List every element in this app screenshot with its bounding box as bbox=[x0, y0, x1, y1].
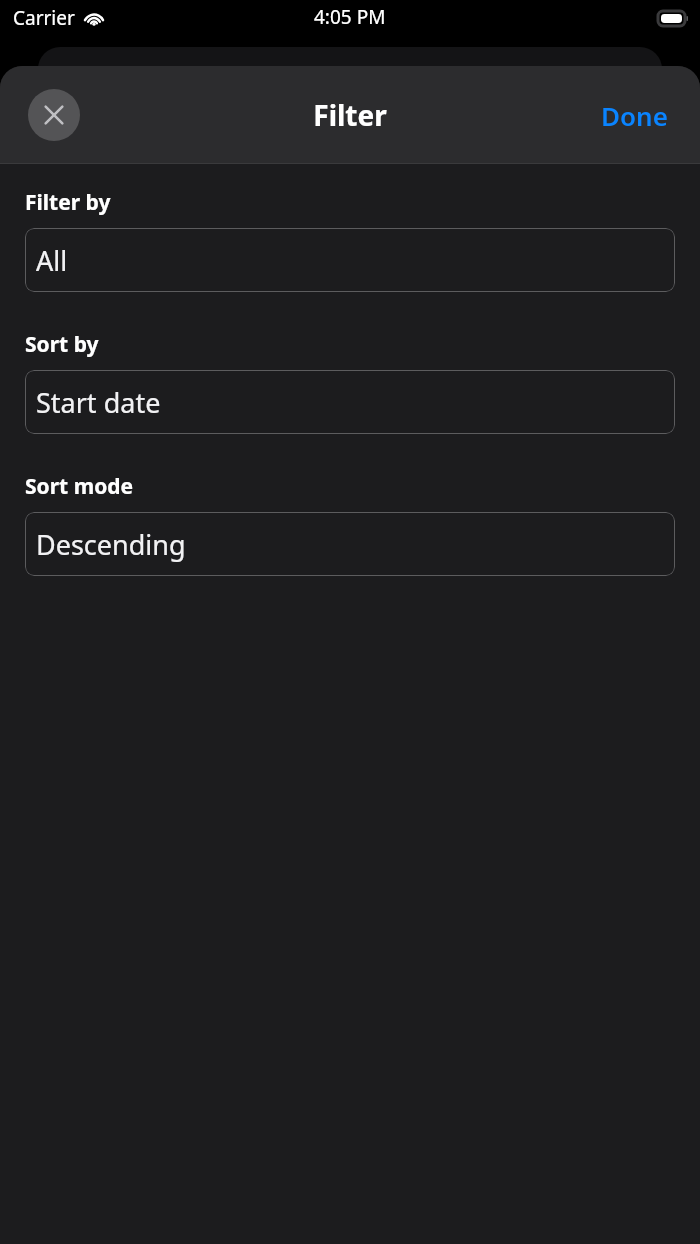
staticText: Done bbox=[601, 98, 668, 133]
staticText: Filter by bbox=[25, 188, 111, 217]
button[interactable]: Close bbox=[28, 89, 80, 141]
staticText: Start date bbox=[36, 384, 161, 421]
button[interactable]: Start date bbox=[25, 370, 675, 434]
staticText: Sort mode bbox=[25, 472, 134, 501]
staticText: Descending bbox=[36, 526, 186, 563]
button[interactable]: Descending bbox=[25, 512, 675, 576]
staticText: Filter bbox=[313, 96, 387, 134]
staticText: All bbox=[36, 242, 68, 279]
staticText: Carrier bbox=[13, 5, 75, 31]
button[interactable]: All bbox=[25, 228, 675, 292]
staticText: 4:05 PM bbox=[314, 4, 386, 30]
staticText: Sort by bbox=[25, 330, 99, 359]
button[interactable]: Done bbox=[589, 90, 680, 141]
